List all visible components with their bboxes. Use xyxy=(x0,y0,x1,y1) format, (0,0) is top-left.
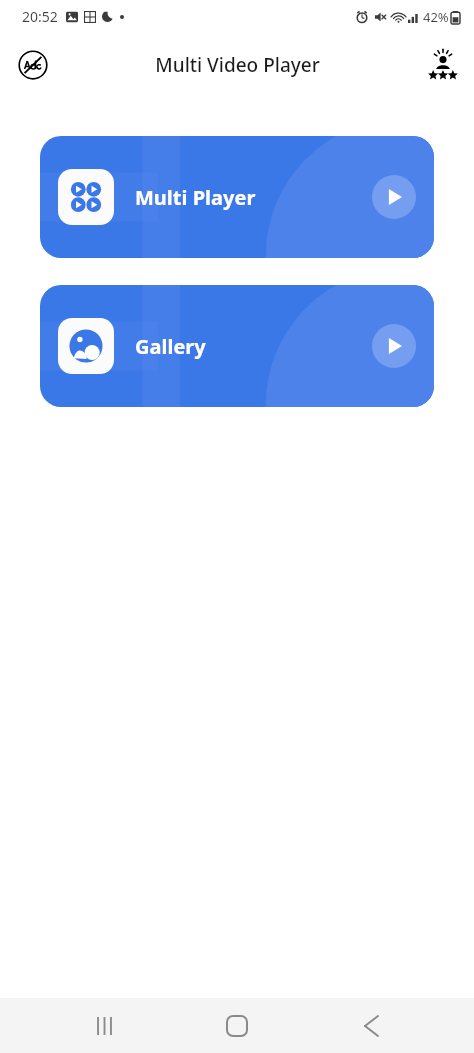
button[interactable]: Gallery xyxy=(40,285,434,407)
staticText: 42% xyxy=(423,8,449,26)
staticText: Gallery xyxy=(135,333,206,360)
button[interactable]: Home xyxy=(207,998,267,1053)
button[interactable]: Rate app xyxy=(420,42,466,88)
staticText: Multi Video Player xyxy=(155,52,320,78)
button[interactable]: Back xyxy=(341,998,401,1053)
staticText: Multi Player xyxy=(135,184,256,211)
button[interactable]: Recents xyxy=(74,998,134,1053)
button[interactable]: Open Multi Player xyxy=(372,175,416,219)
button[interactable]: Open Gallery xyxy=(372,324,416,368)
button[interactable]: Remove ads xyxy=(10,42,56,88)
button[interactable]: Multi Player xyxy=(40,136,434,258)
staticText: 20:52 xyxy=(22,7,58,26)
